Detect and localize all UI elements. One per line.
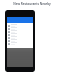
button[interactable] <box>7 33 33 36</box>
button[interactable] <box>7 24 33 27</box>
button[interactable] <box>7 36 33 39</box>
button[interactable] <box>7 39 33 42</box>
button[interactable] <box>7 27 33 30</box>
staticText: New Restaurants Nearby <box>13 2 51 6</box>
button[interactable] <box>7 42 33 45</box>
button[interactable] <box>7 30 33 33</box>
